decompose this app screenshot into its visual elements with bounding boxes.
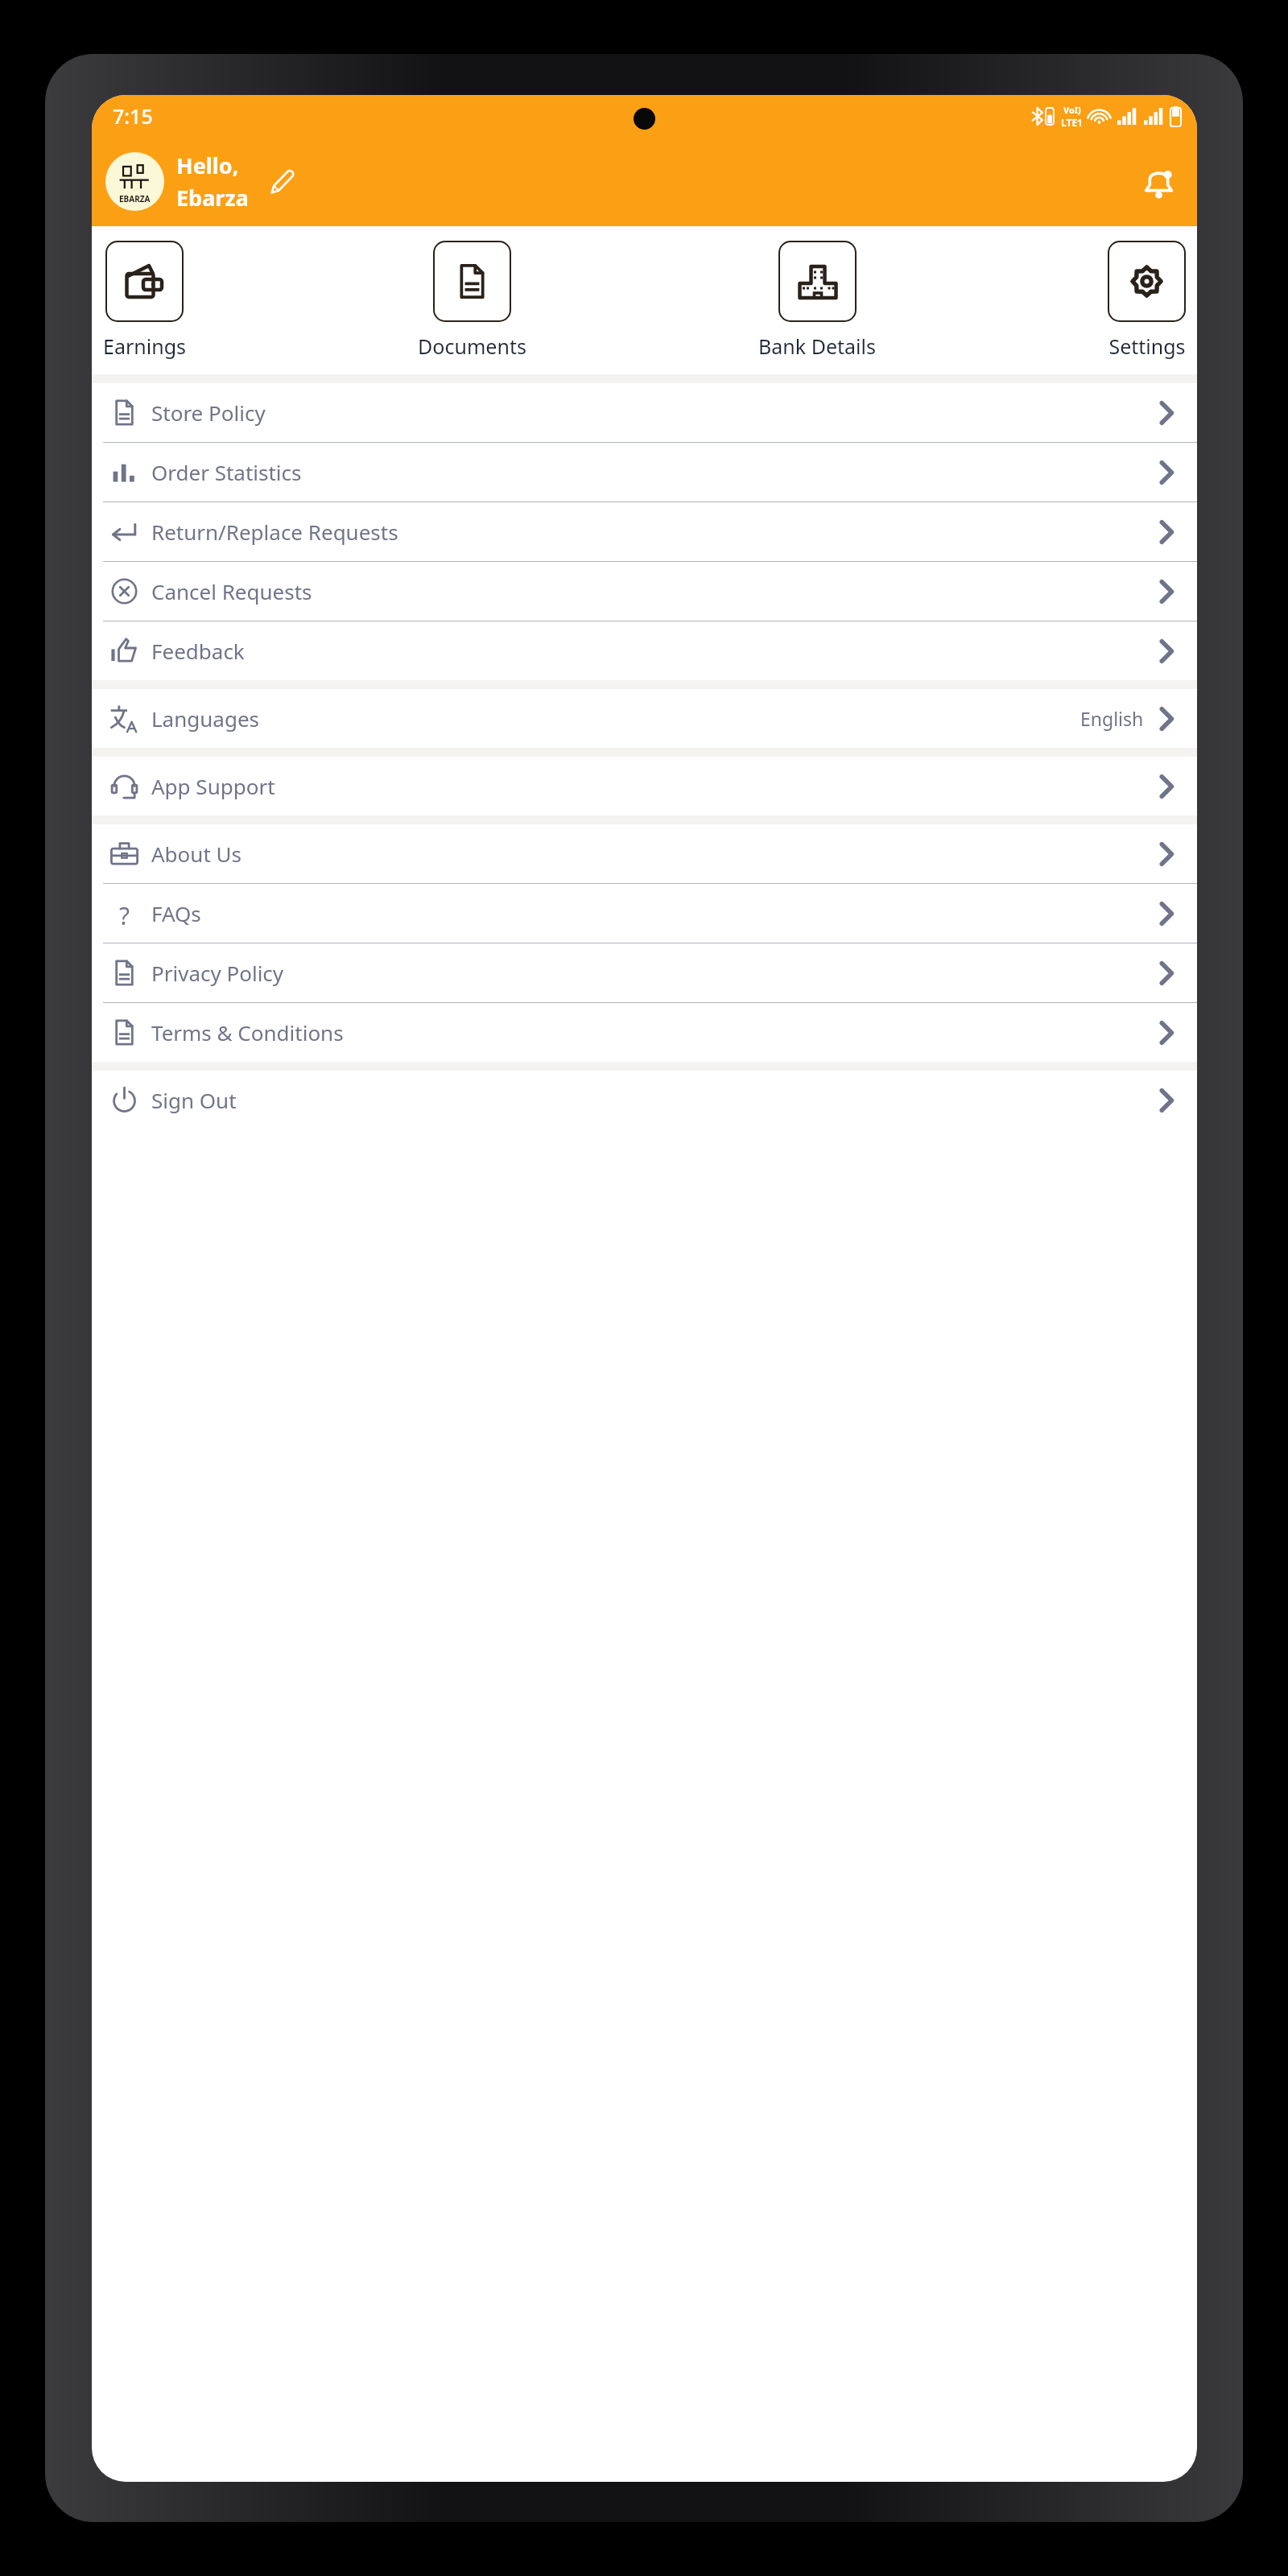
button[interactable]: App Support — [92, 757, 1197, 815]
staticText: VoI) — [1063, 104, 1081, 116]
staticText: App Support — [151, 772, 1152, 800]
button[interactable]: Settings — [1108, 241, 1186, 360]
staticText: Bank Details — [758, 332, 876, 360]
staticText: Order Statistics — [151, 458, 1152, 486]
staticText: Feedback — [151, 637, 1152, 665]
button[interactable]: Sign Out — [92, 1071, 1197, 1129]
button[interactable]: Store Policy — [92, 383, 1197, 442]
staticText: Ebarza — [176, 183, 249, 213]
staticText: EBARZA — [119, 193, 151, 204]
staticText: Terms & Conditions — [151, 1018, 1152, 1046]
staticText: About Us — [151, 840, 1152, 868]
button[interactable]: ? — [92, 884, 1197, 943]
button[interactable]: Earnings — [103, 241, 186, 360]
staticText: Sign Out — [151, 1086, 1152, 1114]
button[interactable]: Notifications — [1138, 161, 1179, 202]
button[interactable]: Bank Details — [758, 241, 876, 360]
button[interactable]: Feedback — [92, 621, 1197, 680]
button[interactable]: Return/Replace Requests — [92, 502, 1197, 561]
staticText: FAQs — [151, 899, 1152, 927]
button[interactable]: Documents — [418, 241, 526, 360]
button[interactable]: About Us — [92, 824, 1197, 883]
button[interactable]: Languages — [92, 689, 1197, 748]
button[interactable]: Privacy Policy — [92, 943, 1197, 1002]
staticText: Cancel Requests — [151, 577, 1152, 605]
staticText: English — [1080, 706, 1144, 731]
button[interactable]: Order Statistics — [92, 443, 1197, 502]
staticText: Store Policy — [151, 398, 1152, 427]
button[interactable]: Edit profile — [265, 163, 301, 200]
staticText: LTE1 — [1061, 116, 1083, 129]
staticText: Documents — [418, 332, 526, 360]
button[interactable]: Profile photo — [105, 152, 164, 211]
staticText: Languages — [151, 704, 1080, 733]
button[interactable]: Terms & Conditions — [92, 1003, 1197, 1062]
staticText: Earnings — [103, 332, 186, 360]
button[interactable]: Cancel Requests — [92, 562, 1197, 621]
staticText: Settings — [1108, 332, 1186, 360]
staticText: Hello, — [176, 151, 239, 180]
staticText: Privacy Policy — [151, 959, 1152, 987]
staticText: 7:15 — [113, 102, 153, 130]
staticText: ? — [119, 899, 130, 927]
staticText: Return/Replace Requests — [151, 518, 1152, 546]
